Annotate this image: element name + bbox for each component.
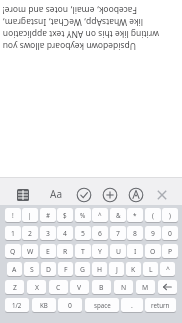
staticText: 8 xyxy=(133,229,137,238)
button[interactable]: | xyxy=(22,208,38,223)
button[interactable]: 3 xyxy=(40,226,56,241)
staticText: writing like this on ANY text applicatio… xyxy=(2,28,159,40)
button[interactable]: 5 xyxy=(75,226,91,241)
staticText: T xyxy=(81,247,85,256)
staticText: 1 xyxy=(11,229,15,238)
button[interactable]: * xyxy=(127,208,143,223)
button[interactable]: K xyxy=(126,262,141,277)
button[interactable]: ^ xyxy=(92,208,108,223)
button[interactable]: return xyxy=(145,298,176,313)
button[interactable] xyxy=(74,185,94,205)
button[interactable]: T xyxy=(75,244,91,259)
button[interactable] xyxy=(158,280,177,295)
button[interactable]: N xyxy=(114,280,133,295)
button[interactable]: C xyxy=(49,280,68,295)
staticText: K xyxy=(131,265,136,274)
button[interactable]: P xyxy=(162,244,178,259)
button[interactable] xyxy=(126,185,146,205)
button[interactable] xyxy=(13,185,33,205)
staticText: B xyxy=(99,283,104,292)
button[interactable]: space xyxy=(85,298,119,313)
staticText: space xyxy=(94,301,111,309)
button[interactable]: 8 xyxy=(127,226,143,241)
button[interactable]: 2 xyxy=(22,226,38,241)
staticText: P xyxy=(168,247,173,256)
button[interactable]: E xyxy=(40,244,56,259)
staticText: N xyxy=(121,283,127,292)
button[interactable]: ^ xyxy=(160,262,175,277)
button[interactable]: X xyxy=(27,280,46,295)
button[interactable]: O xyxy=(145,244,161,259)
button[interactable]: U xyxy=(110,244,126,259)
staticText: & xyxy=(116,211,121,220)
button[interactable]: Z xyxy=(5,280,24,295)
button[interactable]: F xyxy=(58,262,73,277)
staticText: Upsidedown keyboard allows you xyxy=(2,40,136,52)
button[interactable]: I xyxy=(127,244,143,259)
button[interactable]: ) xyxy=(162,208,178,223)
button[interactable]: Aa xyxy=(44,184,68,204)
button[interactable]: L xyxy=(143,262,158,277)
staticText: Aa xyxy=(50,187,62,201)
button[interactable]: ( xyxy=(145,208,161,223)
button[interactable] xyxy=(152,185,172,205)
button[interactable]: $ xyxy=(57,208,73,223)
staticText: 1/2 xyxy=(12,301,22,309)
staticText: O xyxy=(150,247,156,256)
staticText: Q xyxy=(10,247,16,256)
staticText: M xyxy=(142,283,149,292)
staticText: S xyxy=(30,265,34,274)
button[interactable]: V xyxy=(70,280,89,295)
staticText: 3 xyxy=(46,229,50,238)
staticText: U xyxy=(116,247,121,256)
button[interactable]: 6 xyxy=(92,226,108,241)
staticText: return xyxy=(151,301,170,309)
button[interactable]: 4 xyxy=(57,226,73,241)
button[interactable]: W xyxy=(22,244,38,259)
button[interactable]: # xyxy=(40,208,56,223)
staticText: ^ xyxy=(98,211,102,220)
button[interactable]: Y xyxy=(92,244,108,259)
staticText: X xyxy=(35,283,39,292)
button[interactable]: % xyxy=(75,208,91,223)
staticText: Y xyxy=(98,247,102,256)
button[interactable]: 0 xyxy=(162,226,178,241)
staticText: V xyxy=(77,283,82,292)
button[interactable]: S xyxy=(24,262,39,277)
staticText: W xyxy=(27,247,34,256)
staticText: C xyxy=(56,283,61,292)
staticText: ! xyxy=(12,211,14,220)
staticText: 4 xyxy=(63,229,67,238)
staticText: Z xyxy=(13,283,17,292)
button[interactable]: Q xyxy=(5,244,21,259)
button[interactable]: 1/2 xyxy=(5,298,29,313)
staticText: $ xyxy=(63,211,67,220)
staticText: D xyxy=(46,265,51,274)
button[interactable]: 9 xyxy=(145,226,161,241)
staticText: 9 xyxy=(151,229,155,238)
button[interactable]: B xyxy=(92,280,111,295)
button[interactable]: KB xyxy=(32,298,56,313)
staticText: H xyxy=(97,265,103,274)
button[interactable]: ! xyxy=(5,208,21,223)
button[interactable]: M xyxy=(136,280,155,295)
button[interactable]: 1 xyxy=(5,226,21,241)
button[interactable]: J xyxy=(109,262,124,277)
button[interactable]: 0 xyxy=(58,298,82,313)
button[interactable]: 7 xyxy=(110,226,126,241)
button[interactable]: A xyxy=(7,262,22,277)
staticText: KB xyxy=(40,301,48,309)
staticText: A xyxy=(12,265,17,274)
staticText: 5 xyxy=(81,229,85,238)
button[interactable] xyxy=(100,185,120,205)
button[interactable]: D xyxy=(41,262,56,277)
staticText: I xyxy=(134,247,137,256)
button[interactable]: & xyxy=(110,208,126,223)
button[interactable]: G xyxy=(75,262,90,277)
staticText: Facebook, email, notes and more! xyxy=(2,4,137,16)
button[interactable]: R xyxy=(57,244,73,259)
button[interactable]: H xyxy=(92,262,107,277)
button[interactable]: . xyxy=(121,298,143,313)
staticText: L xyxy=(149,265,153,274)
staticText: 2 xyxy=(28,229,32,238)
